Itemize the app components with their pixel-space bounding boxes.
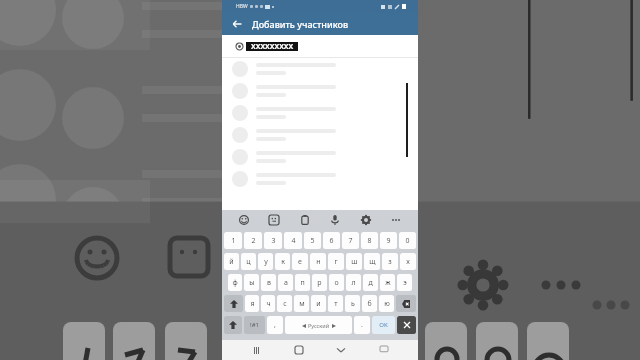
staticText: р [317, 278, 322, 288]
button[interactable]: ч [261, 295, 275, 312]
button[interactable]: п [295, 274, 310, 291]
button[interactable]: т [328, 295, 343, 312]
button[interactable]: л [346, 274, 361, 291]
button[interactable]: OK [372, 316, 395, 334]
button[interactable]: 2 [244, 232, 262, 249]
staticText: , [274, 320, 276, 330]
button[interactable] [222, 124, 418, 146]
staticText: е [298, 257, 302, 267]
button[interactable]: н [310, 253, 326, 270]
button[interactable]: э [397, 274, 412, 291]
button[interactable] [222, 146, 418, 168]
button[interactable] [222, 58, 418, 80]
staticText: 5 [310, 236, 315, 246]
button[interactable]: 0 [399, 232, 416, 249]
staticText: б [367, 299, 372, 309]
button[interactable]: х [400, 253, 416, 270]
button[interactable]: Стикеры [265, 211, 283, 229]
button[interactable]: Удалить [396, 295, 416, 312]
button[interactable]: б [362, 295, 377, 312]
button[interactable]: й [224, 253, 239, 270]
staticText: а [284, 278, 288, 288]
button[interactable]: Ещё [387, 211, 405, 229]
staticText: ф [232, 278, 238, 288]
button[interactable]: 5 [304, 232, 321, 249]
button[interactable]: 4 [284, 232, 302, 249]
button[interactable]: Недавние [247, 341, 265, 359]
button[interactable]: ф [228, 274, 242, 291]
staticText: 7 [348, 236, 353, 246]
staticText: м [299, 299, 305, 309]
staticText: с [283, 299, 287, 309]
staticText: т [334, 299, 338, 309]
staticText: н [316, 257, 321, 267]
staticText: 8 [367, 236, 372, 246]
button[interactable]: з [382, 253, 398, 270]
staticText: я [250, 299, 255, 309]
staticText: л [351, 278, 356, 288]
button[interactable]: Удалить [397, 316, 416, 334]
staticText: 4 [291, 236, 296, 246]
button[interactable]: д [363, 274, 378, 291]
button[interactable]: а [278, 274, 293, 291]
button[interactable]: ц [241, 253, 256, 270]
button[interactable]: ы [244, 274, 259, 291]
button[interactable]: р [312, 274, 327, 291]
button[interactable]: Эмодзи [235, 211, 253, 229]
button[interactable]: !#1 [244, 316, 265, 334]
button[interactable]: 1 [224, 232, 242, 249]
staticText: . [361, 320, 363, 330]
button[interactable]: Микрофон [326, 211, 344, 229]
button[interactable]: ь [345, 295, 360, 312]
button[interactable]: , [267, 316, 283, 334]
button[interactable]: ш [346, 253, 362, 270]
button[interactable]: Настройки [357, 211, 375, 229]
button[interactable]: м [294, 295, 309, 312]
button[interactable]: щ [364, 253, 380, 270]
button[interactable]: Русский [285, 316, 352, 334]
staticText: 1 [231, 236, 236, 246]
button[interactable]: 8 [361, 232, 378, 249]
button[interactable]: 3 [264, 232, 282, 249]
staticText: 0 [405, 236, 410, 246]
button[interactable]: 7 [342, 232, 359, 249]
button[interactable]: я [245, 295, 259, 312]
button[interactable]: Клавиатура [375, 341, 393, 359]
staticText: Добавить участников [252, 18, 349, 30]
button[interactable]: с [277, 295, 292, 312]
button[interactable]: XXXXXXXXX [222, 35, 418, 57]
button[interactable] [222, 80, 418, 102]
staticText: Русский [308, 322, 330, 329]
button[interactable]: ю [379, 295, 394, 312]
staticText: д [368, 278, 373, 288]
button[interactable]: у [258, 253, 273, 270]
staticText: з [388, 257, 392, 267]
staticText: э [403, 278, 407, 288]
button[interactable]: 6 [323, 232, 340, 249]
staticText: 6 [329, 236, 334, 246]
button[interactable]: . [354, 316, 370, 334]
button[interactable] [222, 168, 418, 190]
button[interactable]: Shift [224, 295, 243, 312]
button[interactable]: Домой [290, 341, 308, 359]
staticText: ы [249, 278, 255, 288]
button[interactable]: о [329, 274, 344, 291]
button[interactable]: Назад [228, 15, 246, 33]
button[interactable]: в [261, 274, 276, 291]
button[interactable]: г [328, 253, 344, 270]
staticText: в [267, 278, 271, 288]
button[interactable]: к [275, 253, 290, 270]
button[interactable]: ж [380, 274, 395, 291]
button[interactable]: е [292, 253, 308, 270]
button[interactable]: Буфер обмена [296, 211, 314, 229]
button[interactable]: и [311, 295, 326, 312]
button[interactable] [222, 102, 418, 124]
staticText: у [264, 257, 268, 267]
button[interactable]: Shift [224, 316, 242, 334]
staticText: й [229, 257, 234, 267]
button[interactable]: Скрыть клавиатуру [332, 341, 350, 359]
staticText: ц [246, 257, 251, 267]
staticText: к [281, 257, 285, 267]
button[interactable]: 9 [380, 232, 397, 249]
staticText: ч [266, 299, 271, 309]
